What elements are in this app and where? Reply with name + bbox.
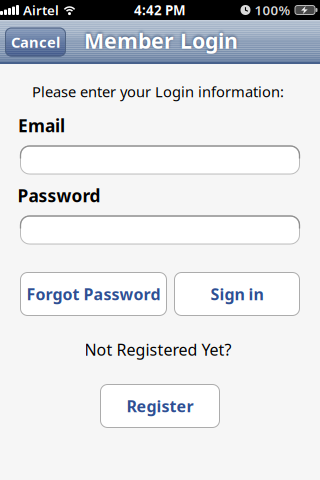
button[interactable]: Register [100, 384, 220, 428]
button[interactable]: Forgot Password [20, 272, 167, 316]
staticText: Email [18, 114, 65, 137]
staticText: Airtel [23, 1, 59, 19]
button[interactable] [20, 145, 300, 174]
staticText: Cancel [11, 32, 60, 52]
staticText: Register [126, 395, 193, 417]
staticText: 100% [254, 1, 290, 19]
staticText: Not Registered Yet? [84, 339, 231, 360]
staticText: Member Login [84, 26, 238, 55]
button[interactable] [20, 215, 300, 244]
button[interactable]: Sign in [174, 272, 300, 316]
staticText: Password [17, 184, 100, 207]
staticText: 4:42 PM [134, 1, 186, 19]
staticText: Forgot Password [26, 283, 160, 305]
button[interactable]: Cancel [5, 27, 66, 56]
staticText: Please enter your Login information: [32, 82, 284, 101]
staticText: Sign in [210, 283, 263, 305]
